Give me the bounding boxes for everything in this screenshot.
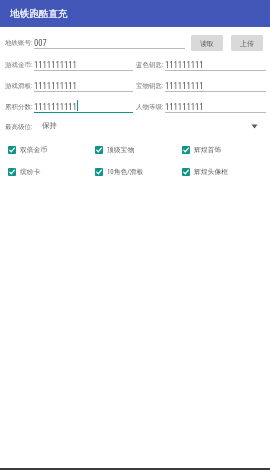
button[interactable] xyxy=(136,100,266,113)
button[interactable]: 辉煌首饰 xyxy=(182,145,262,154)
staticText: 宝物钥匙: xyxy=(136,82,164,90)
staticText: 1111111111 xyxy=(34,60,77,70)
staticText: 111111111 xyxy=(165,81,204,91)
button[interactable]: 读取 xyxy=(191,35,223,51)
staticText: 蓝色钥匙: xyxy=(136,61,164,69)
button[interactable] xyxy=(5,58,133,71)
staticText: 111111111 xyxy=(165,102,204,112)
staticText: 缤纷卡 xyxy=(20,167,41,176)
staticText: 111111111 xyxy=(165,60,204,70)
button[interactable]: 最高级位: xyxy=(0,120,270,136)
button[interactable] xyxy=(136,58,266,71)
staticText: 游戏滑板: xyxy=(5,82,33,90)
staticText: 1111111111 xyxy=(34,81,77,91)
staticText: 地铁账号: xyxy=(5,39,33,47)
button[interactable] xyxy=(5,36,185,49)
staticText: 10角色/滑板 xyxy=(107,167,144,176)
staticText: 地铁跑酷直充 xyxy=(10,8,68,20)
button[interactable]: 上传 xyxy=(231,35,263,51)
button[interactable] xyxy=(5,79,133,92)
staticText: 007 xyxy=(34,38,47,48)
staticText: 累积分数: xyxy=(5,103,33,111)
button[interactable] xyxy=(5,100,133,113)
staticText: 顶级宝物 xyxy=(107,145,135,154)
other: Expand dropdown xyxy=(251,124,258,129)
button[interactable]: 顶级宝物 xyxy=(95,145,175,154)
button[interactable]: 双倍金币 xyxy=(8,145,88,154)
staticText: 读取 xyxy=(200,39,214,48)
button[interactable]: 缤纷卡 xyxy=(8,167,88,176)
staticText: 辉煌头像框 xyxy=(194,167,228,176)
staticText: 1111111111 xyxy=(34,102,77,112)
button[interactable]: 辉煌头像框 xyxy=(182,167,262,176)
staticText: 人物等级: xyxy=(136,103,164,111)
staticText: 游戏金币: xyxy=(5,61,33,69)
staticText: 最高级位: xyxy=(5,123,33,131)
button[interactable]: 10角色/滑板 xyxy=(95,167,175,176)
staticText: 双倍金币 xyxy=(20,145,48,154)
button[interactable] xyxy=(136,79,266,92)
staticText: 保持 xyxy=(42,121,57,130)
staticText: 辉煌首饰 xyxy=(194,145,222,154)
staticText: 上传 xyxy=(240,39,254,48)
